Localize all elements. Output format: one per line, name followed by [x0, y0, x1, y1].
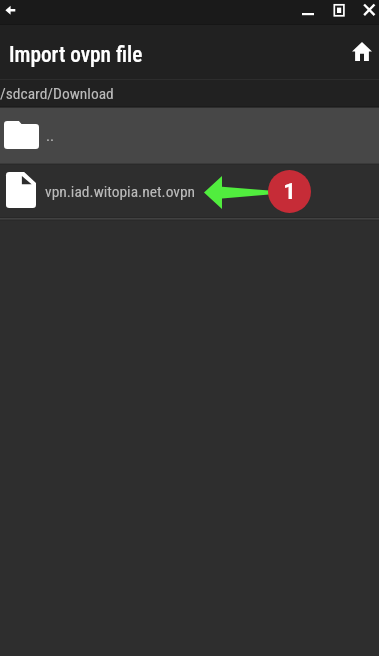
button[interactable]: Home — [347, 36, 377, 66]
button[interactable]: Minimize — [294, 1, 322, 24]
staticText: /sdcard/Download — [0, 85, 114, 103]
staticText: .. — [46, 127, 55, 145]
button[interactable]: .. — [0, 108, 379, 163]
button[interactable]: Maximize — [327, 0, 351, 22]
staticText: 1 — [283, 179, 296, 205]
staticText: Import ovpn file — [9, 42, 143, 67]
button[interactable]: Back — [1, 1, 20, 20]
button[interactable]: Close — [357, 0, 379, 21]
staticText: vpn.iad.witopia.net.ovpn — [45, 183, 196, 201]
button[interactable]: vpn.iad.witopia.net.ovpn — [0, 165, 379, 217]
